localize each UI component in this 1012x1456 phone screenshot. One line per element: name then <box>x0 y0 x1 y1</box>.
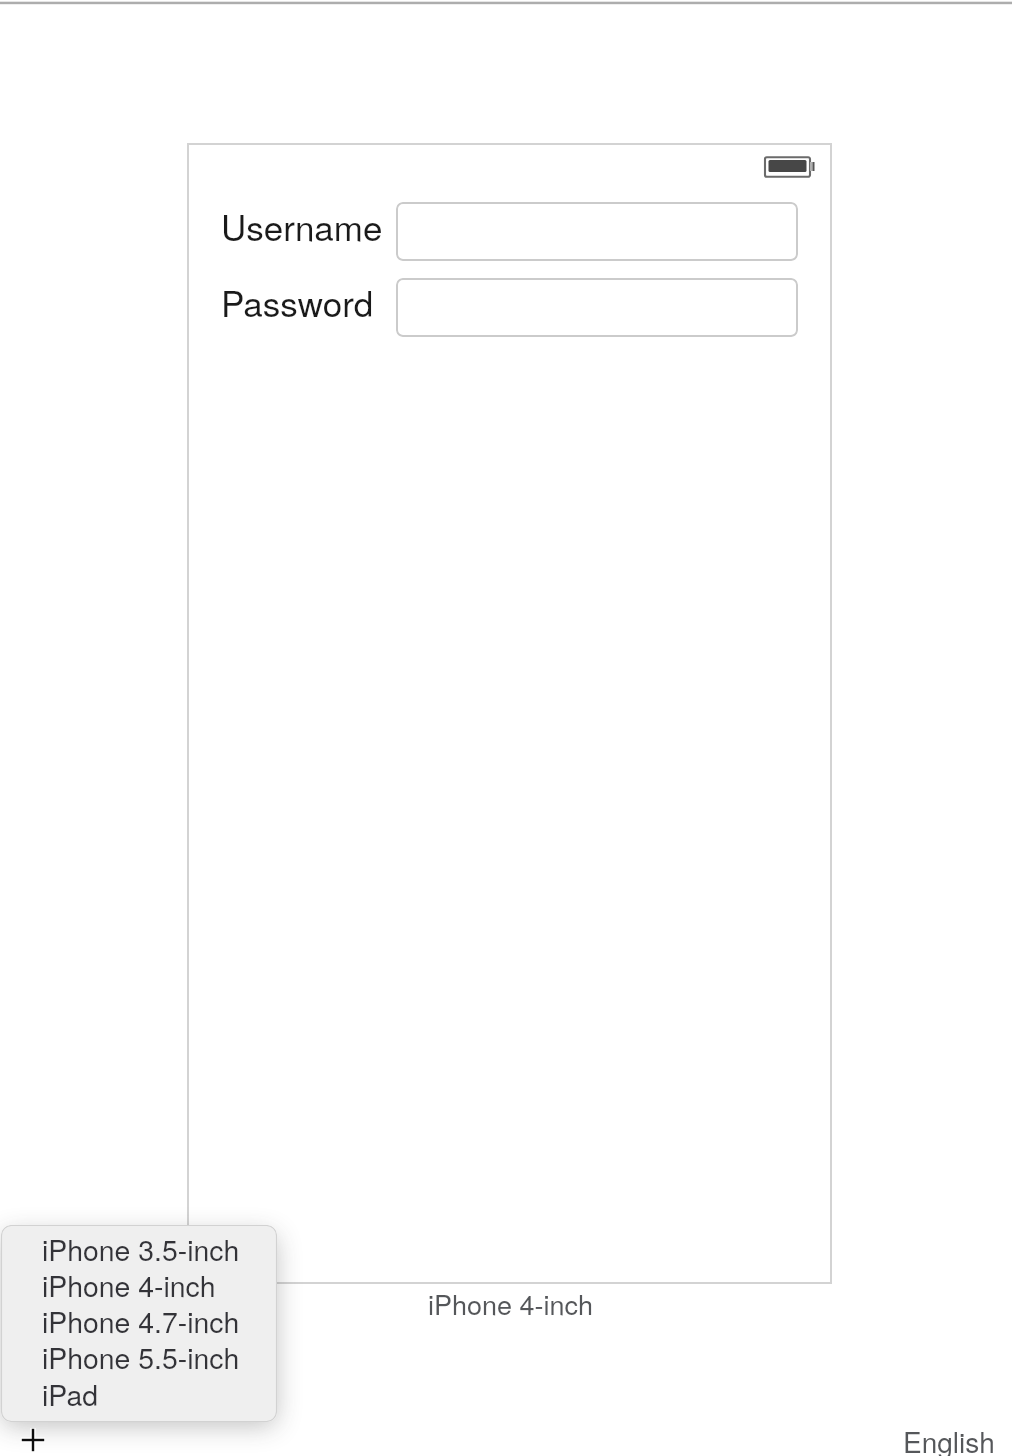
button[interactable]: Add device <box>10 1424 56 1456</box>
button[interactable]: iPhone 4-inch <box>1 1264 277 1300</box>
button[interactable]: Password text field <box>396 278 798 337</box>
staticText: iPhone 4.7-inch <box>42 1300 240 1336</box>
button[interactable]: iPhone 5.5-inch <box>1 1336 277 1372</box>
button[interactable]: iPad <box>1 1373 277 1409</box>
button[interactable]: Username text field <box>396 202 798 261</box>
other: Battery level <box>760 152 820 180</box>
button[interactable]: iPhone 3.5-inch <box>1 1228 277 1264</box>
staticText: iPhone 4-inch <box>428 1284 594 1323</box>
staticText: Username <box>221 201 383 251</box>
staticText: iPhone 5.5-inch <box>42 1336 240 1372</box>
staticText: iPhone 4-inch <box>42 1264 216 1300</box>
staticText: English <box>903 1421 995 1456</box>
staticText: iPad <box>42 1373 98 1409</box>
button[interactable]: iPhone 4.7-inch <box>1 1300 277 1336</box>
button[interactable]: English <box>884 1410 1012 1456</box>
staticText: iPhone 3.5-inch <box>42 1228 240 1264</box>
staticText: Password <box>221 277 374 327</box>
